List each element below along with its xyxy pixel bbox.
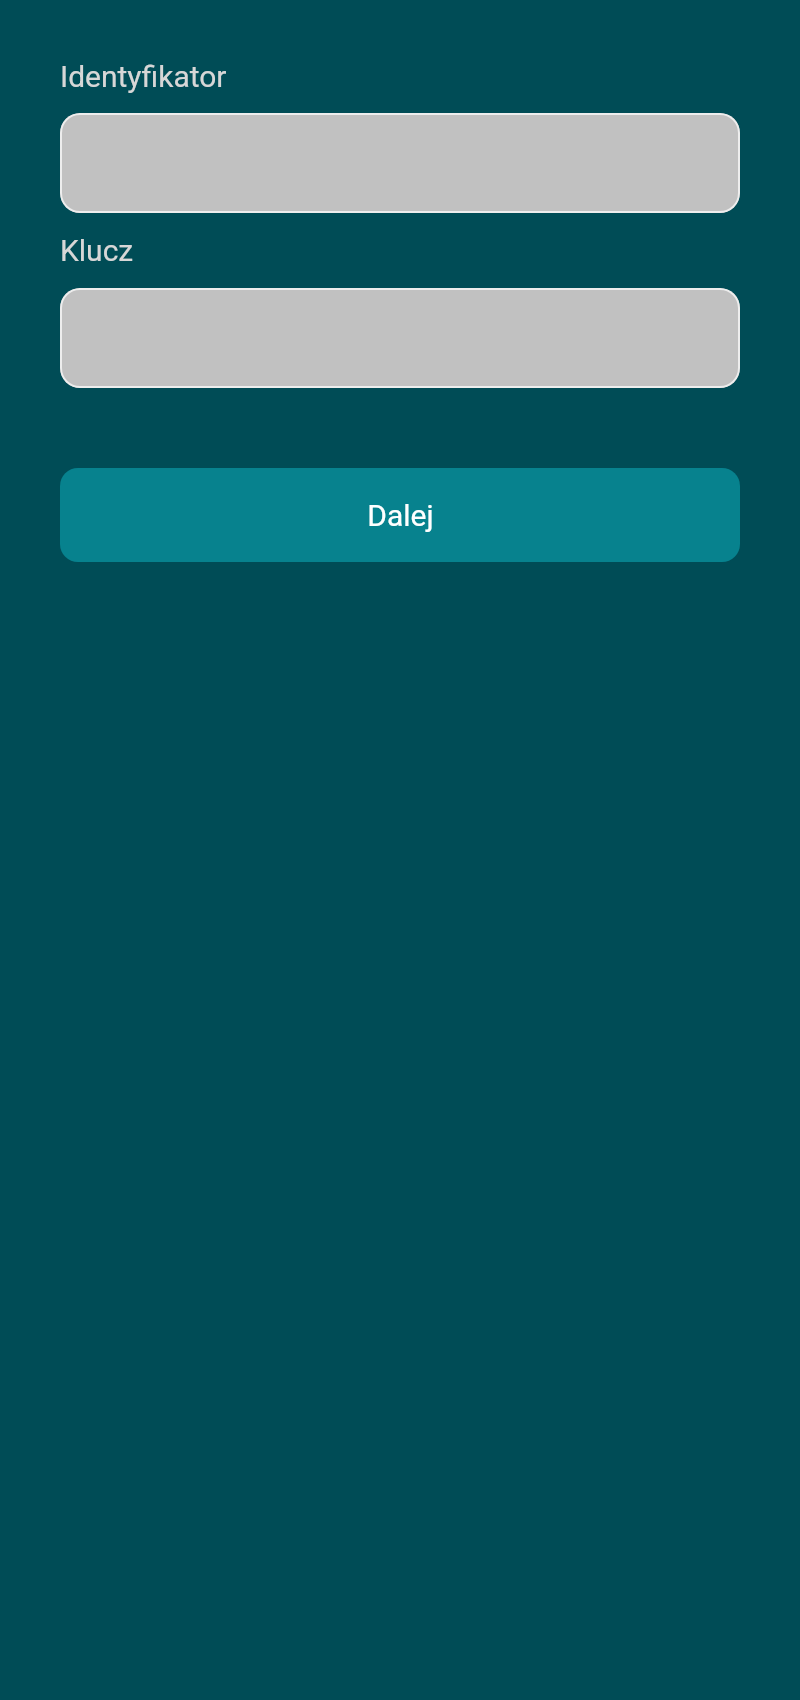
button[interactable]: Identyfikator — [60, 113, 740, 213]
staticText: Klucz — [60, 233, 134, 268]
button[interactable]: Dalej — [60, 468, 740, 562]
button[interactable]: Klucz — [60, 288, 740, 388]
staticText: Dalej — [367, 498, 434, 533]
staticText: Identyfikator — [60, 59, 227, 94]
